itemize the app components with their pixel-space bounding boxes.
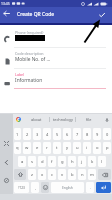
button[interactable]: English (51, 182, 84, 193)
button[interactable]: 9 (93, 128, 101, 140)
button[interactable]: y (63, 142, 71, 154)
button[interactable]: l (98, 156, 106, 167)
staticText: l (101, 159, 103, 165)
staticText: e (36, 145, 39, 151)
staticText: 4 (46, 132, 49, 137)
button[interactable]: a (18, 156, 26, 167)
button[interactable]: 4 (43, 128, 51, 140)
button[interactable]: ?123 (14, 182, 29, 193)
button[interactable]: w (23, 142, 31, 154)
staticText: n (81, 172, 84, 178)
staticText: 1 (16, 132, 19, 137)
button[interactable]: 6 (63, 128, 71, 140)
staticText: technology (53, 117, 73, 122)
button[interactable]: g (58, 156, 66, 167)
staticText: English (62, 186, 73, 190)
button[interactable]: Enter (96, 182, 111, 193)
button[interactable]: Code description (0, 47, 112, 69)
button[interactable]: n (78, 169, 86, 180)
button[interactable]: h (68, 156, 76, 167)
staticText: Mobile No. of ... (15, 56, 95, 63)
button[interactable]: v (58, 169, 66, 180)
button[interactable]: 1 (14, 128, 21, 140)
staticText: h (71, 159, 74, 165)
button[interactable]: q (14, 142, 21, 154)
button[interactable]: Voice input (101, 113, 112, 126)
staticText: Code description (15, 51, 44, 56)
button[interactable]: Phone (required) (0, 26, 112, 48)
button[interactable]: e (33, 142, 41, 154)
button[interactable]: d (38, 156, 46, 167)
button[interactable]: 0 (103, 128, 111, 140)
staticText: p (106, 145, 109, 151)
button[interactable]: r (43, 142, 51, 154)
button[interactable]: i (83, 142, 91, 154)
staticText: r (46, 145, 48, 151)
button[interactable]: 5 (53, 128, 61, 140)
staticText: Information (15, 77, 95, 84)
button[interactable]: Drag keyboard (1, 175, 12, 186)
button[interactable]: c (48, 169, 56, 180)
staticText: . (90, 185, 91, 190)
staticText: w (25, 145, 29, 151)
button[interactable]: Navigate up (0, 7, 13, 20)
staticText: 0 (106, 132, 109, 137)
button[interactable]: 3 (33, 128, 41, 140)
staticText: about (31, 117, 42, 122)
button[interactable]: Move keyboard left (1, 157, 12, 168)
staticText: 7 (76, 132, 79, 137)
staticText: t (56, 145, 58, 151)
button[interactable]: m (88, 169, 96, 180)
staticText: q (16, 145, 19, 151)
staticText: 9 (96, 132, 99, 137)
staticText: x (41, 172, 44, 178)
staticText: k (91, 159, 94, 165)
staticText: Create QR Code (17, 11, 55, 18)
staticText: b (71, 172, 74, 178)
staticText: z (31, 172, 33, 178)
button[interactable]: file (76, 113, 101, 126)
button[interactable]: about (24, 113, 49, 126)
button[interactable]: Shift (14, 169, 26, 180)
staticText: d (41, 159, 44, 165)
button[interactable]: b (68, 169, 76, 180)
button[interactable]: . (86, 182, 94, 193)
button[interactable]: 8 (83, 128, 91, 140)
staticText: , (35, 185, 36, 190)
staticText: u (76, 145, 79, 151)
button[interactable]: Label (0, 68, 112, 89)
button[interactable]: o (93, 142, 101, 154)
button[interactable]: technology (50, 113, 75, 126)
button[interactable]: , (31, 182, 39, 193)
button[interactable]: Emoji (41, 182, 49, 193)
staticText: y (66, 145, 69, 151)
button[interactable]: j (78, 156, 86, 167)
staticText: j (81, 159, 83, 165)
staticText: 3 (36, 132, 39, 137)
button[interactable]: p (103, 142, 111, 154)
button[interactable]: t (53, 142, 61, 154)
button[interactable]: z (28, 169, 36, 180)
staticText: 5 (56, 132, 59, 137)
button[interactable]: s (28, 156, 36, 167)
staticText: g (61, 159, 64, 165)
staticText: Phone (required) (15, 30, 44, 35)
staticText: v (61, 172, 64, 178)
button[interactable]: Expand keyboard (1, 138, 12, 149)
staticText: o (96, 145, 99, 151)
staticText: a (21, 159, 24, 165)
staticText: 8 (86, 132, 89, 137)
staticText: Label (15, 72, 25, 77)
button[interactable]: k (88, 156, 96, 167)
button[interactable]: 7 (73, 128, 81, 140)
button[interactable]: x (38, 169, 46, 180)
button[interactable]: Backspace (98, 169, 111, 180)
button[interactable]: Save (95, 8, 108, 21)
button[interactable]: u (73, 142, 81, 154)
button[interactable]: f (48, 156, 56, 167)
staticText: 2 (26, 132, 29, 137)
button[interactable]: 2 (23, 128, 31, 140)
staticText: 13:45 (1, 1, 10, 6)
staticText: m (90, 172, 94, 178)
button[interactable]: Google search (13, 113, 24, 126)
